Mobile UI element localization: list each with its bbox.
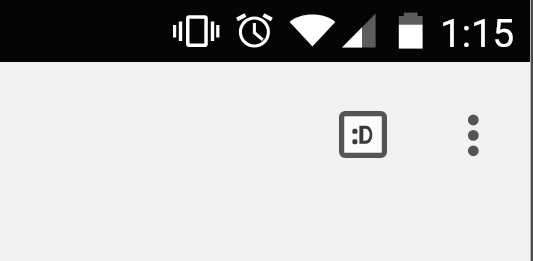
button[interactable]: Emoticon [339, 111, 387, 158]
button[interactable]: More options [457, 108, 490, 162]
staticText: 1:15 [440, 11, 515, 56]
